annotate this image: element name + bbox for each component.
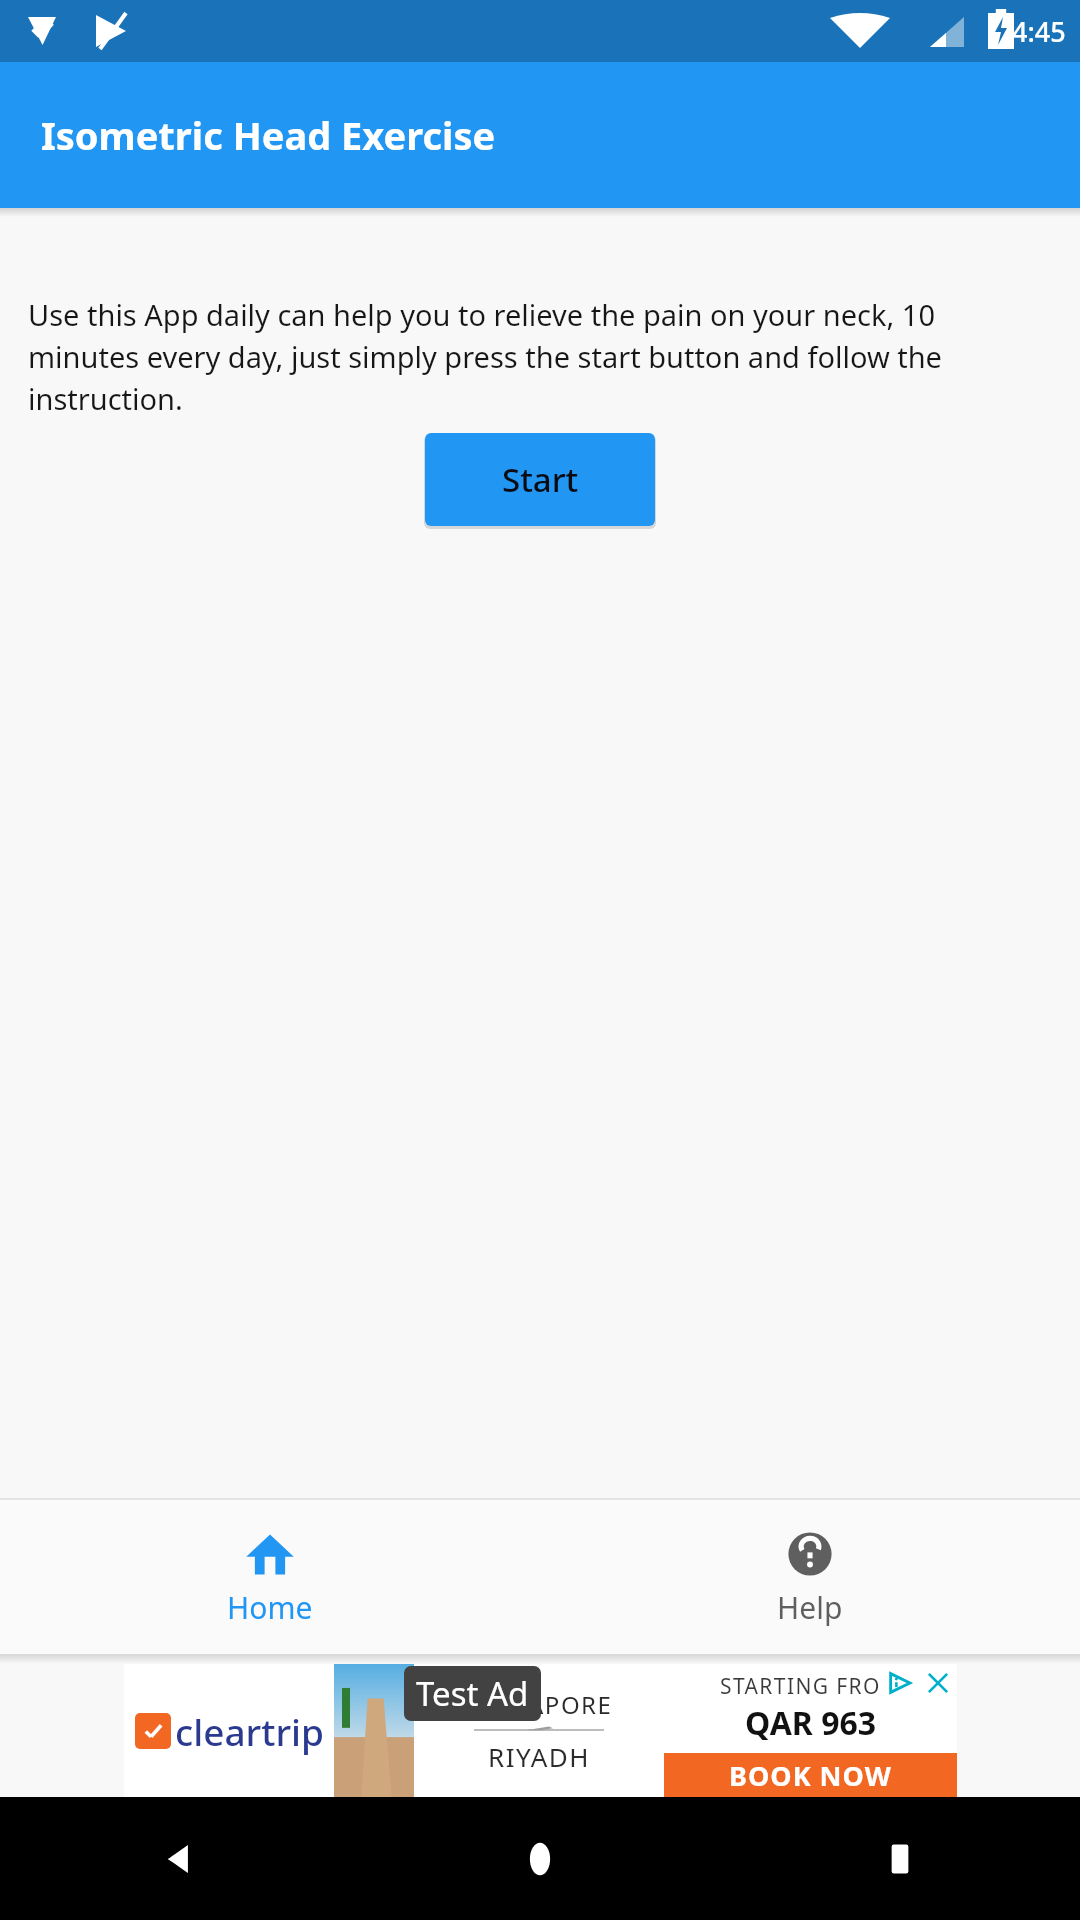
staticText: RIYADH [488,1739,591,1774]
staticText: Isometric Head Exercise [41,109,496,161]
button[interactable]: BOOK NOW [664,1753,957,1797]
staticText: Test Ad [416,1671,529,1716]
button[interactable]: Start [425,433,655,526]
staticText: BOOK NOW [729,1757,892,1794]
staticText: STARTING FROM [720,1672,902,1701]
staticText: Start [502,457,579,502]
button[interactable]: Ad choices [881,1664,919,1702]
button[interactable]: cleartrip [124,1664,957,1797]
staticText: Home [227,1587,313,1628]
button[interactable]: Recent apps [720,1797,1080,1920]
staticText: Help [777,1587,843,1628]
staticText: 4:45 [1012,13,1066,50]
button[interactable]: Back [0,1797,360,1920]
staticText: QAR 963 [745,1701,877,1745]
button[interactable]: Home [360,1797,720,1920]
button[interactable]: Help [540,1500,1080,1654]
button[interactable]: Close ad [919,1664,957,1702]
button[interactable]: Home [0,1500,540,1654]
staticText: Use this App daily can help you to relie… [28,295,1052,418]
staticText: cleartrip [175,1706,324,1756]
staticText: SINGAPORE [465,1688,613,1721]
